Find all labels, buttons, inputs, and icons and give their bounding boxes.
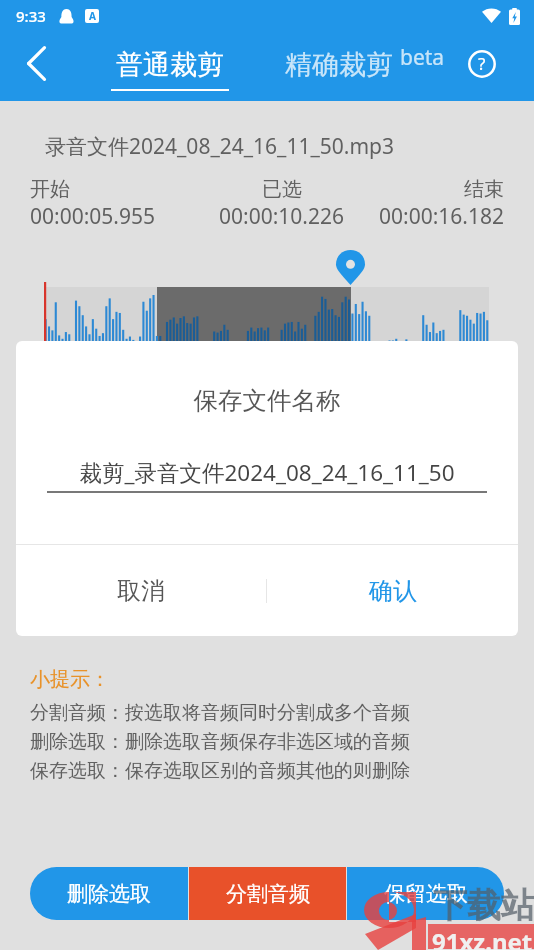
button[interactable]: 确认 bbox=[267, 545, 518, 636]
staticText: 普通裁剪 bbox=[116, 48, 224, 82]
staticText: 00:00:05.955 bbox=[30, 202, 155, 231]
button[interactable]: 普通裁剪 bbox=[100, 48, 240, 98]
button[interactable]: 精确裁剪 bbox=[285, 48, 445, 92]
staticText: 删除选取：删除选取音频保存非选区域的音频 bbox=[30, 730, 410, 754]
staticText: 保存文件名称 bbox=[16, 385, 518, 416]
staticText: 精确裁剪 bbox=[285, 48, 393, 82]
staticText: 已选 bbox=[262, 177, 302, 202]
staticText: 取消 bbox=[117, 576, 165, 606]
staticText: 00:00:10.226 bbox=[219, 202, 344, 231]
staticText: ? bbox=[478, 52, 486, 75]
staticText: 分割音频 bbox=[226, 881, 310, 907]
staticText: 录音文件2024_08_24_16_11_50.mp3 bbox=[45, 132, 394, 161]
button[interactable]: Help bbox=[458, 40, 506, 88]
staticText: 小提示： bbox=[30, 667, 110, 692]
button[interactable]: 分割音频 bbox=[189, 867, 346, 920]
staticText: 下载站 bbox=[433, 884, 534, 927]
staticText: 裁剪_录音文件2024_08_24_16_11_50 bbox=[16, 457, 518, 488]
staticText: 删除选取 bbox=[67, 881, 151, 907]
button[interactable]: 取消 bbox=[16, 545, 266, 636]
staticText: 保存选取：保存选取区别的音频其他的则删除 bbox=[30, 759, 410, 783]
staticText: 分割音频：按选取将音频同时分割成多个音频 bbox=[30, 701, 410, 725]
button[interactable]: 保留选取 bbox=[347, 867, 504, 920]
staticText: 确认 bbox=[369, 576, 417, 606]
staticText: 结束 bbox=[464, 177, 504, 202]
staticText: 00:00:16.182 bbox=[379, 202, 504, 231]
button[interactable]: 删除选取 bbox=[30, 867, 188, 920]
staticText: A bbox=[89, 9, 96, 23]
staticText: 9:33 bbox=[16, 6, 46, 26]
staticText: 91xz.net bbox=[432, 925, 533, 950]
button[interactable]: Back bbox=[10, 37, 62, 89]
staticText: 开始 bbox=[30, 177, 70, 202]
staticText: 保留选取 bbox=[384, 881, 468, 907]
staticText: beta bbox=[400, 43, 445, 72]
